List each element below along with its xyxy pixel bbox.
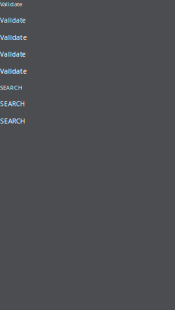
staticText: Validate xyxy=(0,50,26,59)
staticText: Validate xyxy=(0,66,27,76)
staticText: SEARCH xyxy=(0,116,25,125)
staticText: Validate xyxy=(0,0,22,8)
staticText: Validate xyxy=(0,33,27,42)
staticText: Validate xyxy=(0,16,26,25)
staticText: SEARCH xyxy=(0,84,22,91)
staticText: SEARCH xyxy=(0,99,25,108)
